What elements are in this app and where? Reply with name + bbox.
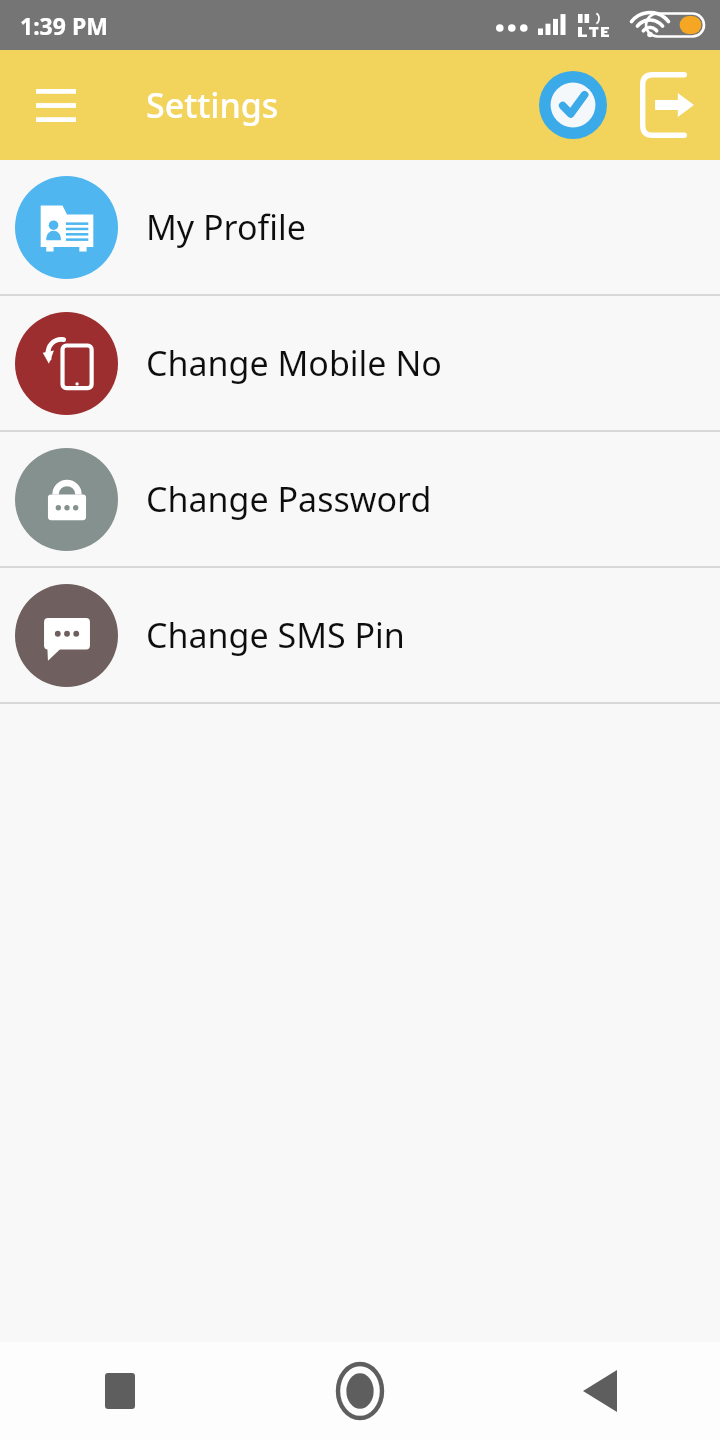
button[interactable]: Change Password xyxy=(0,432,720,566)
staticText: Change Mobile No xyxy=(146,340,442,386)
button[interactable]: Confirm xyxy=(530,62,616,148)
staticText: My Profile xyxy=(146,204,306,250)
staticText: Settings xyxy=(146,82,279,128)
button[interactable]: Back xyxy=(480,1342,720,1440)
button[interactable]: Recent apps xyxy=(0,1342,240,1440)
button[interactable]: Change Mobile No xyxy=(0,296,720,430)
button[interactable]: My Profile xyxy=(0,160,720,294)
staticText: Change SMS Pin xyxy=(146,612,405,658)
button[interactable]: Home xyxy=(240,1342,480,1440)
staticText: 1:39 PM xyxy=(20,10,108,41)
button[interactable]: Open navigation menu xyxy=(14,63,98,147)
staticText: Change Password xyxy=(146,476,432,522)
button[interactable]: Change SMS Pin xyxy=(0,568,720,702)
button[interactable]: Log out xyxy=(624,62,710,148)
